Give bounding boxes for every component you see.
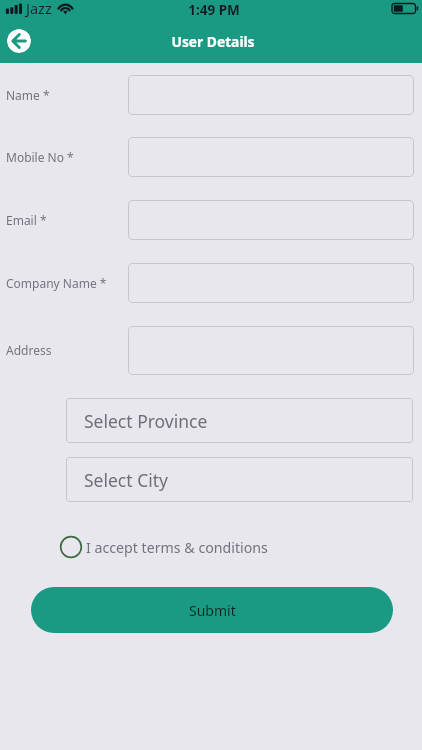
staticText: Address xyxy=(6,342,52,358)
staticText: I accept terms & conditions xyxy=(86,538,268,557)
button[interactable]: Submit xyxy=(31,587,393,633)
staticText: Company Name * xyxy=(6,275,107,291)
staticText: Mobile No * xyxy=(6,149,74,165)
button[interactable]: Email * xyxy=(128,200,414,240)
button[interactable]: Mobile No * xyxy=(128,137,414,177)
staticText: User Details xyxy=(2,32,422,51)
button[interactable]: Select City xyxy=(66,457,413,502)
staticText: Email * xyxy=(6,212,47,228)
button[interactable]: Select Province xyxy=(66,398,413,443)
button[interactable]: Company Name * xyxy=(128,263,414,303)
staticText: Submit xyxy=(189,601,236,620)
button[interactable]: I accept terms & conditions xyxy=(59,532,269,562)
staticText: 1:49 PM xyxy=(3,1,422,19)
button[interactable]: Name * xyxy=(128,75,414,115)
staticText: Jazz xyxy=(26,0,52,18)
staticText: Select Province xyxy=(84,409,208,433)
staticText: Select City xyxy=(84,468,168,492)
button[interactable]: Address xyxy=(128,326,414,375)
button[interactable]: Back xyxy=(7,29,31,53)
staticText: Name * xyxy=(6,87,50,103)
